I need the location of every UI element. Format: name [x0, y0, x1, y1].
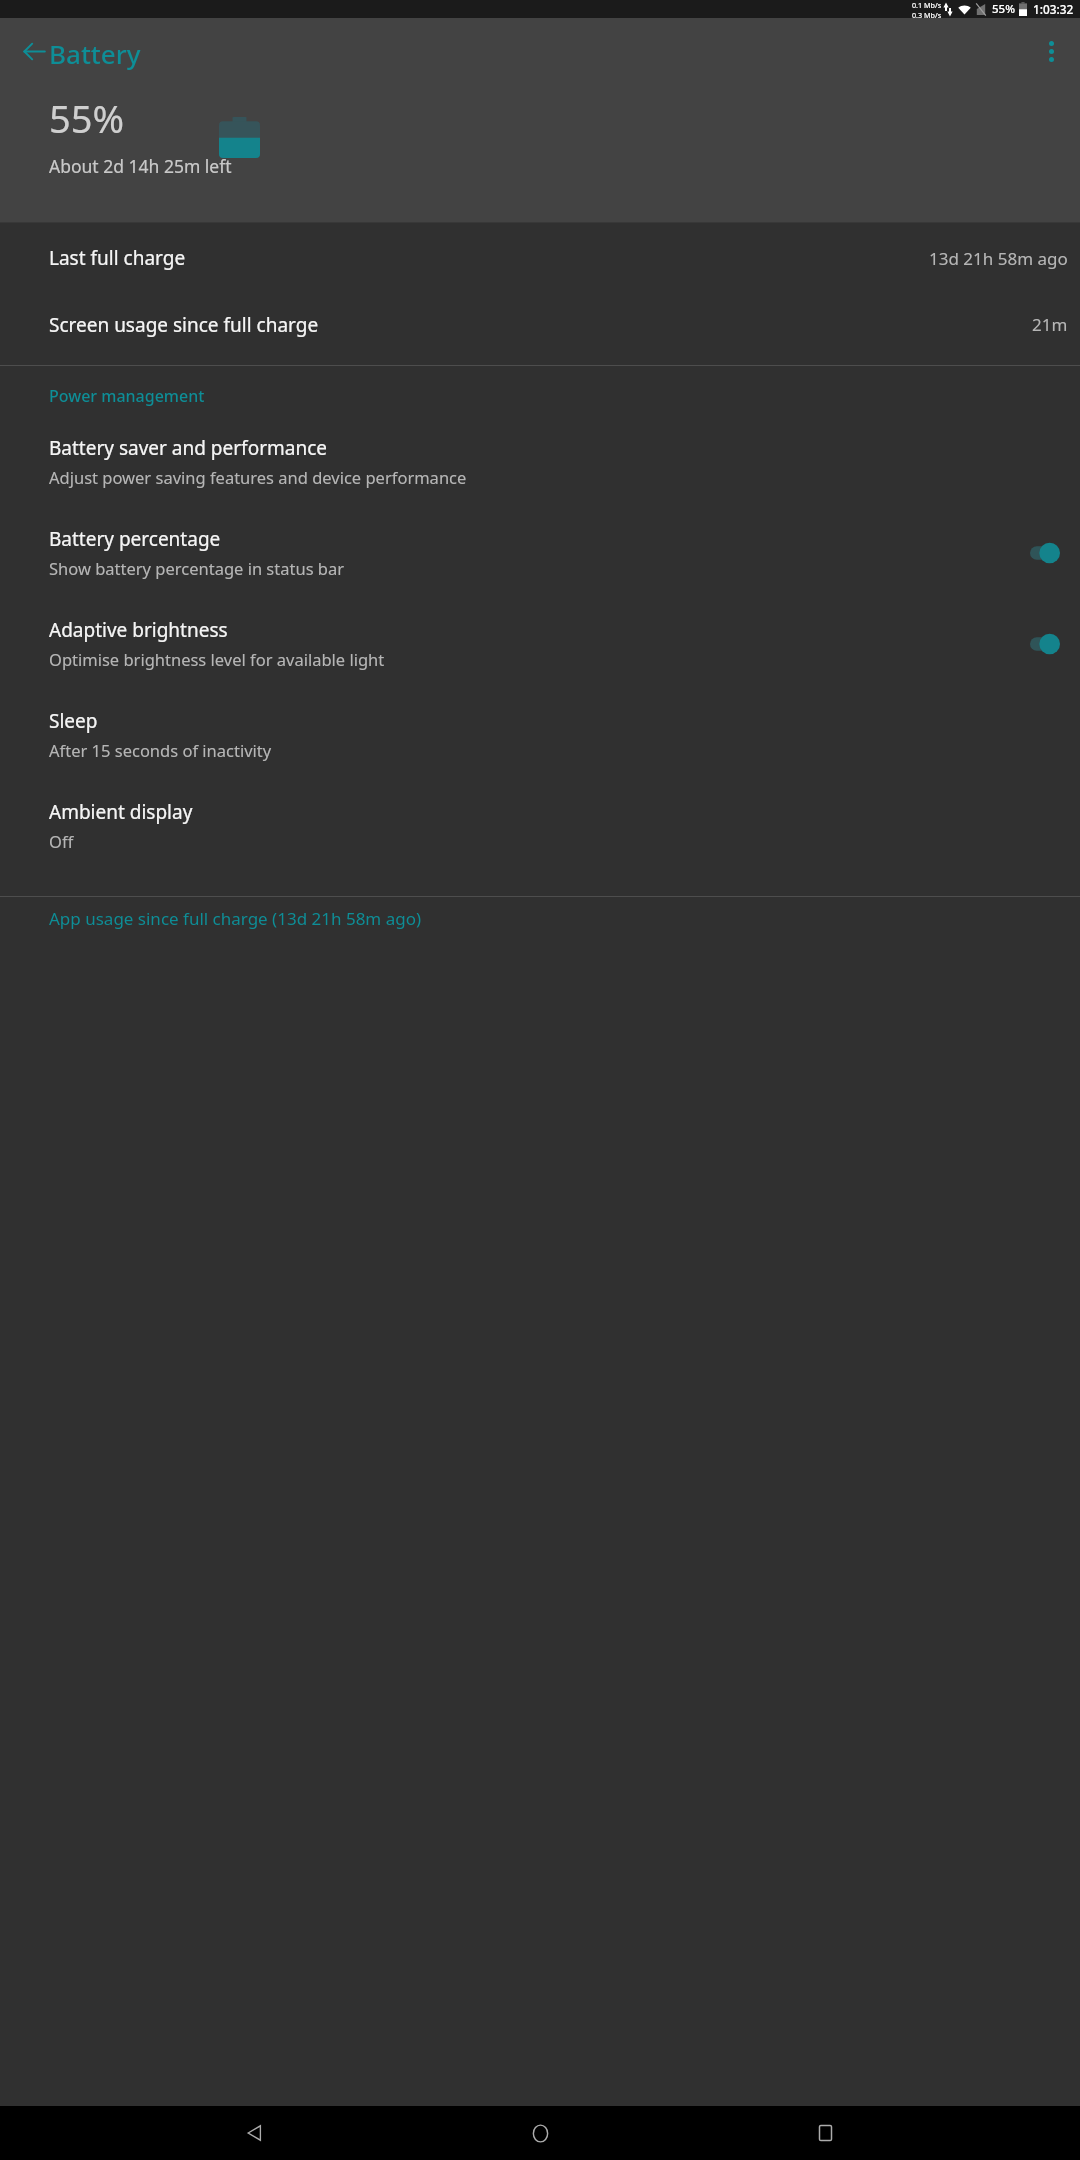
staticText: Last full charge — [49, 245, 186, 271]
staticText: Adaptive brightness — [49, 617, 228, 643]
staticText: 0.3 Mb/s — [912, 10, 942, 18]
button[interactable]: Sleep — [0, 689, 1080, 780]
staticText: 1:03:32 — [1033, 1, 1074, 17]
button[interactable]: More options — [1024, 24, 1078, 78]
staticText: Battery saver and performance — [49, 435, 327, 461]
staticText: Battery — [49, 36, 141, 71]
other: Toggle Battery percentage — [1030, 542, 1060, 564]
staticText: 21m — [1032, 313, 1068, 336]
button[interactable]: Last full charge — [0, 223, 1080, 293]
staticText: Optimise brightness level for available … — [49, 648, 385, 670]
button[interactable]: Battery saver and performance — [0, 416, 1080, 507]
staticText: Ambient display — [49, 799, 193, 825]
staticText: Show battery percentage in status bar — [49, 557, 345, 579]
button[interactable]: Screen usage since full charge — [0, 293, 1080, 356]
button[interactable]: Ambient display — [0, 780, 1080, 871]
staticText: About 2d 14h 25m left — [49, 154, 232, 178]
other: Toggle Adaptive brightness — [1030, 633, 1060, 655]
staticText: Sleep — [49, 708, 98, 734]
button[interactable]: Back — [7, 24, 61, 78]
staticText: Power management — [49, 385, 205, 407]
staticText: 13d 21h 58m ago — [929, 247, 1068, 270]
button[interactable]: Battery percentage — [0, 507, 1080, 598]
button[interactable]: App usage since full charge (13d 21h 58m… — [0, 897, 1080, 939]
button[interactable]: Home — [510, 2106, 570, 2160]
staticText: 55% — [992, 1, 1015, 17]
staticText: Screen usage since full charge — [49, 312, 319, 338]
staticText: After 15 seconds of inactivity — [49, 739, 272, 761]
staticText: Adjust power saving features and device … — [49, 466, 467, 488]
staticText: Off — [49, 830, 74, 852]
button[interactable]: Recent apps — [795, 2106, 855, 2160]
staticText: 0.1 Mb/s — [912, 0, 942, 10]
button[interactable]: Back — [225, 2106, 285, 2160]
button[interactable]: Adaptive brightness — [0, 598, 1080, 689]
staticText: 55% — [49, 92, 125, 144]
staticText: App usage since full charge (13d 21h 58m… — [49, 907, 422, 930]
staticText: Battery percentage — [49, 526, 221, 552]
